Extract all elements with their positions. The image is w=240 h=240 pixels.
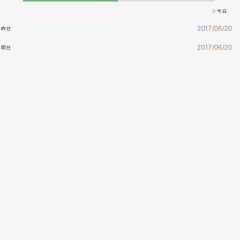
staticText: 今日 [217, 7, 227, 14]
staticText: 昨日 [1, 25, 11, 32]
staticText: 2017/06/20 [197, 25, 232, 32]
staticText: 明日 [1, 44, 11, 51]
button[interactable]: 昨日 [0, 19, 240, 37]
button[interactable]: 今日 [0, 1, 240, 18]
staticText: 2017/06/20 [197, 44, 232, 51]
button[interactable]: 明日 [0, 38, 240, 56]
